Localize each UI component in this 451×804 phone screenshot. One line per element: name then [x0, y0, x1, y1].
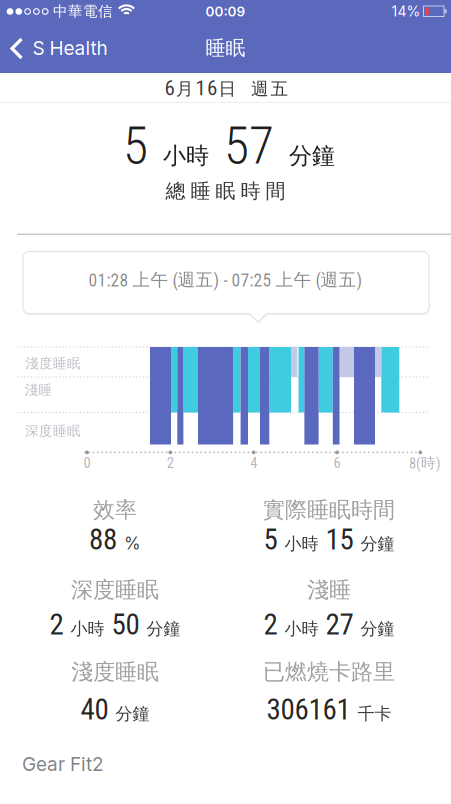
staticText: 分鐘 — [146, 618, 180, 639]
staticText: 深度睡眠 — [71, 576, 159, 603]
staticText: 深度睡眠 — [25, 423, 81, 439]
staticText: 分鐘 — [360, 618, 394, 639]
staticText: 分鐘 — [289, 142, 335, 170]
staticText: 小時 — [70, 618, 104, 639]
staticText: 睡眠 — [205, 36, 245, 60]
staticText: 總睡眠時間 — [165, 179, 285, 203]
staticText: 27 — [325, 608, 353, 641]
staticText: 小時 — [284, 618, 318, 639]
staticText: 淺睡 — [307, 576, 351, 603]
staticText: % — [124, 533, 141, 553]
staticText: 00:09 — [205, 3, 245, 19]
staticText: 15 — [325, 523, 353, 556]
staticText: 淺睡 — [24, 382, 52, 398]
staticText: 14% — [391, 3, 420, 20]
staticText: 中華電信 — [53, 3, 113, 20]
staticText: 已燃燒卡路里 — [263, 658, 395, 685]
staticText: 50 — [111, 608, 139, 641]
staticText: 57 — [224, 117, 274, 175]
staticText: 分鐘 — [360, 533, 394, 554]
staticText: 2 — [263, 608, 277, 641]
staticText: 40 — [80, 693, 108, 726]
staticText: 效率 — [93, 496, 137, 523]
staticText: 5 — [123, 117, 148, 175]
staticText: S Health — [32, 37, 107, 59]
staticText: 小時 — [163, 142, 209, 170]
staticText: 淺度睡眠 — [25, 355, 81, 372]
staticText: 分鐘 — [115, 703, 149, 724]
staticText: 6月16日 週五 — [164, 76, 288, 100]
staticText: 小時 — [284, 533, 318, 554]
staticText: 淺度睡眠 — [71, 658, 159, 685]
staticText: 5 — [263, 523, 277, 556]
staticText: 2 — [167, 455, 174, 471]
staticText: 0 — [83, 455, 90, 471]
staticText: 千卡 — [357, 703, 391, 724]
staticText: 88 — [89, 523, 117, 556]
staticText: 8(時) — [409, 454, 441, 472]
staticText: 6 — [333, 455, 340, 471]
staticText: 4 — [250, 455, 257, 471]
staticText: 306161 — [266, 693, 350, 726]
staticText: 01:28 上午 (週五) - 07:25 上午 (週五) — [88, 269, 362, 291]
staticText: 2 — [49, 608, 63, 641]
staticText: 實際睡眠時間 — [263, 496, 395, 523]
staticText: Gear Fit2 — [22, 753, 104, 775]
